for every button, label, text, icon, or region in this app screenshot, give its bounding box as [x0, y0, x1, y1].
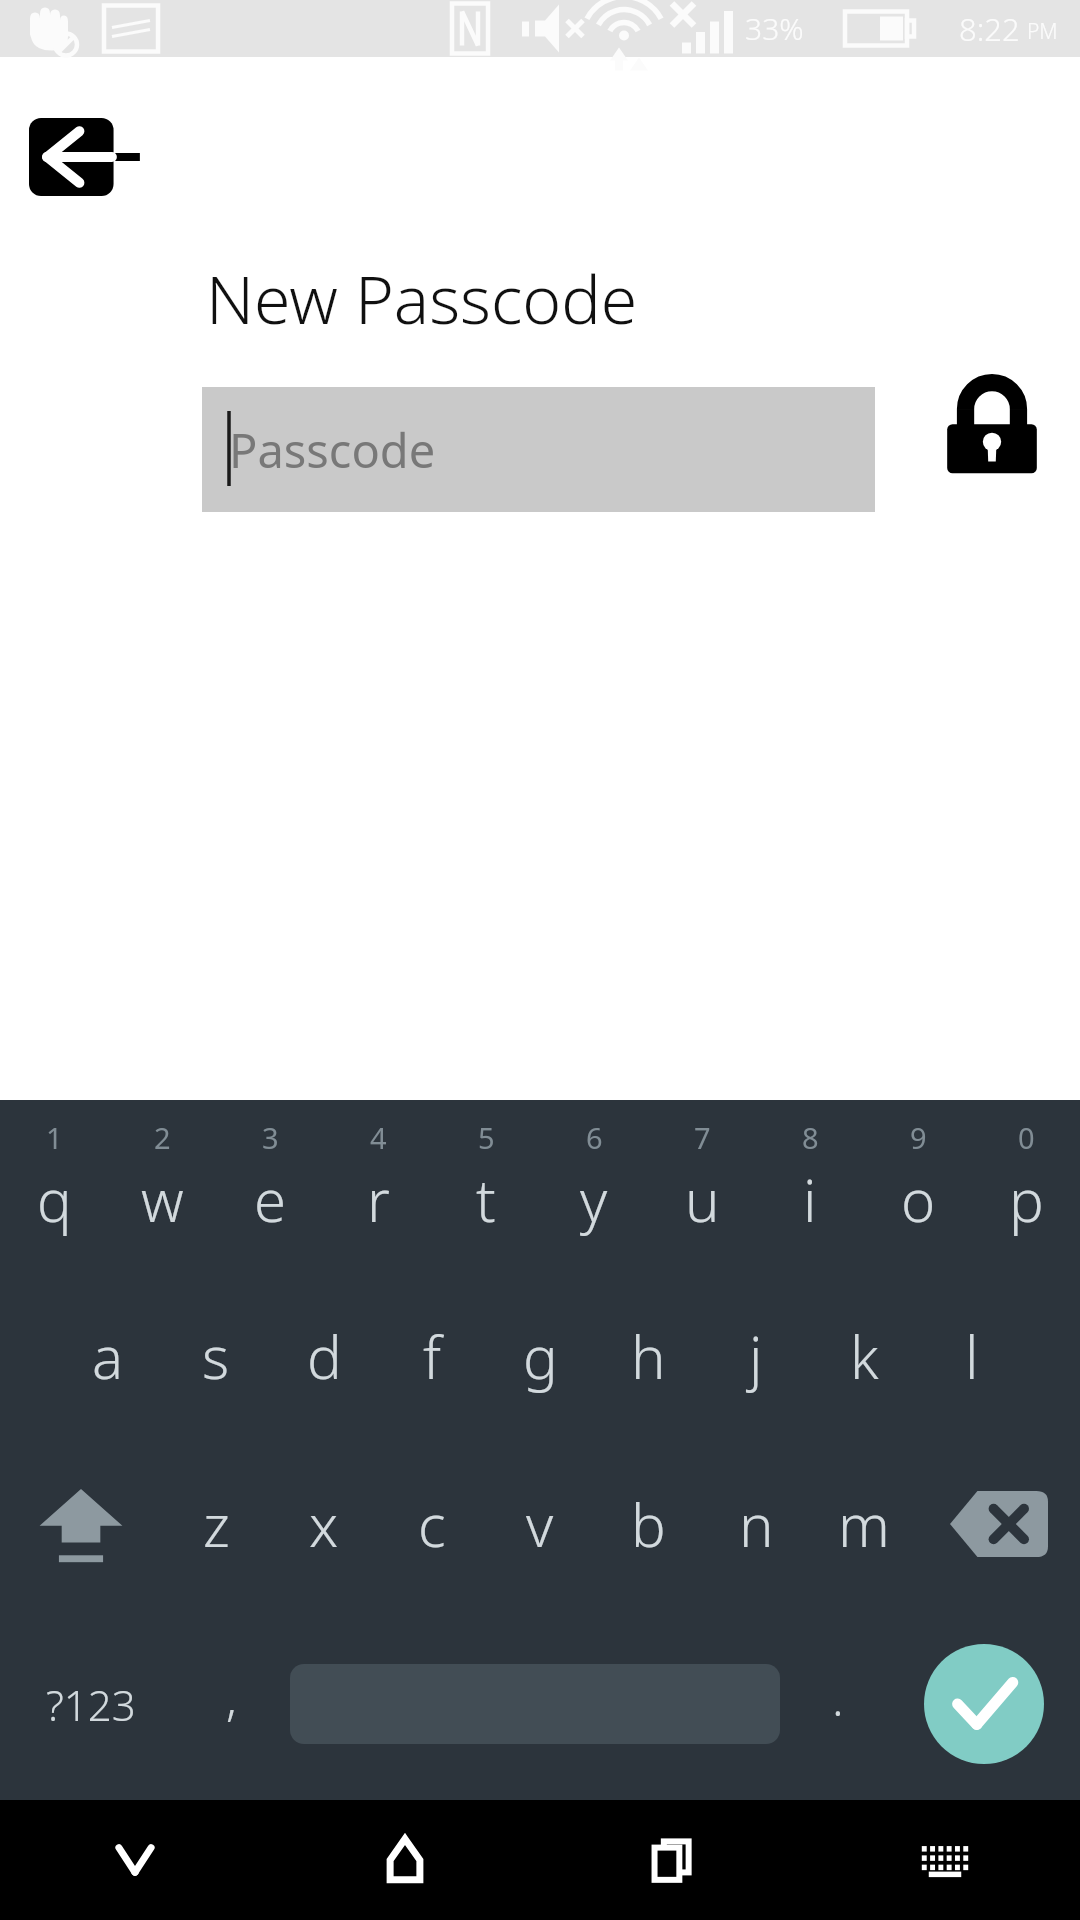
button[interactable]: Hide keyboard	[0, 1800, 270, 1920]
staticText: i	[803, 1160, 817, 1239]
staticText: a	[92, 1317, 124, 1396]
staticText: 7	[694, 1118, 711, 1157]
staticText: r	[367, 1160, 390, 1239]
staticText: 5	[478, 1118, 495, 1157]
staticText: .	[832, 1665, 844, 1730]
button[interactable]: z	[162, 1440, 270, 1608]
button[interactable]: 2	[108, 1100, 216, 1272]
button[interactable]: h	[594, 1272, 702, 1440]
button[interactable]: 1	[0, 1100, 108, 1272]
button[interactable]: Done	[888, 1608, 1080, 1800]
button[interactable]: g	[486, 1272, 594, 1440]
staticText: o	[901, 1160, 936, 1239]
staticText: b	[631, 1485, 666, 1564]
staticText: y	[580, 1160, 608, 1239]
button[interactable]: l	[918, 1272, 1026, 1440]
button[interactable]: .	[787, 1608, 888, 1800]
button[interactable]: Backspace	[918, 1440, 1080, 1608]
staticText: w	[141, 1160, 184, 1239]
staticText: j	[749, 1317, 763, 1396]
button[interactable]: m	[810, 1440, 918, 1608]
staticText: 8:22	[959, 8, 1020, 50]
button[interactable]: 7	[648, 1100, 756, 1272]
button[interactable]: x	[270, 1440, 378, 1608]
button[interactable]: ?123	[0, 1608, 181, 1800]
button[interactable]: Shift	[0, 1440, 162, 1608]
button[interactable]: a	[54, 1272, 162, 1440]
staticText: n	[739, 1485, 774, 1564]
button[interactable]: k	[810, 1272, 918, 1440]
button[interactable]: s	[162, 1272, 270, 1440]
staticText: d	[307, 1317, 342, 1396]
staticText: q	[37, 1160, 72, 1239]
button[interactable]: 8	[756, 1100, 864, 1272]
staticText: p	[1009, 1160, 1044, 1239]
staticText: New Passcode	[206, 253, 638, 343]
staticText: t	[476, 1160, 496, 1239]
staticText: Passcode	[229, 418, 436, 482]
staticText: 1	[46, 1118, 63, 1157]
staticText: 2	[154, 1118, 171, 1157]
button[interactable]: Lock	[938, 375, 1046, 483]
staticText: u	[685, 1160, 720, 1239]
staticText: 6	[586, 1118, 603, 1157]
staticText: l	[965, 1317, 979, 1396]
button[interactable]: ,	[181, 1608, 282, 1800]
staticText: ?123	[46, 1676, 136, 1733]
button[interactable]: 0	[972, 1100, 1080, 1272]
staticText: h	[631, 1317, 666, 1396]
staticText: f	[423, 1317, 441, 1396]
staticText: 3	[262, 1118, 279, 1157]
staticText: 4	[370, 1118, 387, 1157]
staticText: 33%	[745, 8, 804, 49]
staticText: x	[309, 1485, 339, 1564]
staticText: 8	[802, 1118, 819, 1157]
staticText: m	[838, 1485, 890, 1564]
button[interactable]: Switch keyboard	[810, 1800, 1080, 1920]
staticText: 0	[1018, 1118, 1035, 1157]
button[interactable]: j	[702, 1272, 810, 1440]
button[interactable]: f	[378, 1272, 486, 1440]
staticText: g	[523, 1317, 558, 1396]
staticText: PM	[1027, 17, 1058, 46]
button[interactable]: 5	[432, 1100, 540, 1272]
staticText: s	[202, 1317, 230, 1396]
staticText: ,	[226, 1665, 237, 1730]
button[interactable]: 3	[216, 1100, 324, 1272]
staticText: e	[254, 1160, 287, 1239]
button[interactable]: d	[270, 1272, 378, 1440]
button[interactable]: 9	[864, 1100, 972, 1272]
button[interactable]: 4	[324, 1100, 432, 1272]
staticText: z	[203, 1485, 230, 1564]
staticText: k	[850, 1317, 879, 1396]
staticText: v	[526, 1485, 554, 1564]
staticText: c	[418, 1485, 446, 1564]
button[interactable]: Back	[29, 118, 141, 196]
button[interactable]: v	[486, 1440, 594, 1608]
button[interactable]: b	[594, 1440, 702, 1608]
button[interactable]: Home	[270, 1800, 540, 1920]
button[interactable]: 6	[540, 1100, 648, 1272]
button[interactable]: Passcode	[202, 387, 875, 512]
button[interactable]: n	[702, 1440, 810, 1608]
button[interactable]: c	[378, 1440, 486, 1608]
button[interactable]: Recent apps	[540, 1800, 810, 1920]
staticText: 9	[910, 1118, 927, 1157]
button[interactable]	[282, 1608, 787, 1800]
